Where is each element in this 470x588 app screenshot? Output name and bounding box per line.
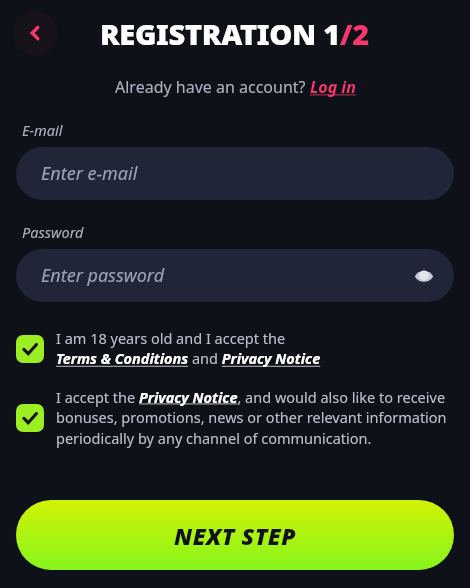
staticText: REGISTRATION 1/2 [100, 14, 370, 53]
staticText: E-mail [22, 120, 63, 140]
staticText: I accept the Privacy Notice, and would a… [56, 387, 454, 449]
staticText: NEXT STEP [174, 520, 297, 551]
button[interactable]: Log in [310, 76, 356, 98]
staticText: Enter password [41, 263, 165, 288]
button[interactable]: Enter e-mail [16, 147, 454, 200]
button[interactable]: Enter password [16, 249, 454, 302]
button[interactable]: Checkbox, checked [16, 404, 44, 432]
button[interactable]: Show password [410, 262, 438, 290]
staticText: Enter e-mail [41, 161, 138, 186]
button[interactable]: Back [13, 11, 57, 55]
button[interactable]: Checkbox, checked [0, 387, 470, 449]
button[interactable]: Checkbox, checked [0, 328, 470, 369]
staticText: I am 18 years old and I accept the Terms… [56, 328, 321, 369]
staticText: Already have an account? [115, 76, 310, 98]
button[interactable]: NEXT STEP [16, 500, 454, 570]
staticText: Password [22, 222, 84, 242]
staticText: Log in [310, 76, 356, 98]
button[interactable]: Checkbox, checked [16, 335, 44, 363]
